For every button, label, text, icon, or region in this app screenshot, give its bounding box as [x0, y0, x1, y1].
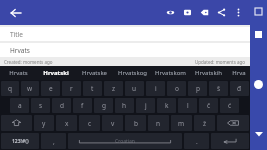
staticText: Hrvatskom — [155, 69, 186, 77]
staticText: w — [27, 84, 33, 93]
staticText: o — [175, 84, 179, 93]
button[interactable]: Shift — [1, 115, 32, 131]
button[interactable]: j — [136, 98, 155, 113]
staticText: i — [155, 84, 157, 93]
button[interactable]: ž — [194, 115, 215, 131]
button[interactable]: Home — [250, 71, 267, 97]
staticText: z — [112, 84, 116, 93]
button[interactable]: w — [21, 81, 39, 96]
button[interactable]: o — [167, 81, 186, 96]
button[interactable]: z — [104, 81, 123, 96]
button[interactable]: g — [94, 98, 113, 113]
button[interactable]: Title — [0, 27, 250, 41]
staticText: Hrvatske — [82, 69, 107, 77]
button[interactable]: Hrvatske — [75, 66, 113, 80]
button[interactable]: q — [1, 81, 19, 96]
button[interactable]: f — [73, 98, 92, 113]
staticText: f — [81, 101, 84, 110]
staticText: Hrvatskih — [195, 69, 222, 77]
button[interactable]: r — [62, 81, 81, 96]
staticText: č — [207, 101, 211, 110]
button[interactable]: Recent apps — [250, 0, 267, 22]
button[interactable]: k — [157, 98, 176, 113]
button[interactable]: n — [148, 115, 169, 131]
button[interactable]: v — [102, 115, 123, 131]
staticText: k — [165, 101, 169, 110]
staticText: š — [217, 84, 221, 93]
staticText: y — [42, 119, 46, 128]
button[interactable]: Hrva — [227, 66, 250, 80]
staticText: . — [196, 137, 198, 146]
button[interactable]: Label — [196, 4, 213, 21]
staticText: e — [49, 84, 53, 93]
staticText: u — [132, 84, 137, 93]
button[interactable]: š — [209, 81, 228, 96]
staticText: d — [60, 101, 64, 110]
staticText: Hrvats — [10, 46, 30, 55]
button[interactable]: u — [125, 81, 144, 96]
staticText: Hrvatskog — [118, 69, 147, 77]
button[interactable]: l — [178, 98, 197, 113]
button[interactable]: c — [79, 115, 100, 131]
button[interactable]: Hrvatskom — [151, 66, 189, 80]
staticText: l — [187, 101, 189, 110]
button[interactable]: h — [115, 98, 134, 113]
button[interactable]: Share — [213, 4, 230, 21]
button[interactable]: Photo — [179, 4, 196, 21]
button[interactable]: b — [125, 115, 146, 131]
staticText: Created: moments ago — [4, 59, 53, 65]
button[interactable]: đ — [230, 81, 249, 96]
button[interactable]: 123!#() — [1, 133, 39, 149]
staticText: x — [65, 119, 69, 128]
button[interactable]: Hrvatskih — [189, 66, 227, 80]
button[interactable]: x — [56, 115, 77, 131]
staticText: n — [156, 119, 161, 128]
staticText: Hrvatski — [43, 69, 69, 77]
button[interactable]: i — [146, 81, 165, 96]
button[interactable]: t — [83, 81, 102, 96]
button[interactable]: Back — [250, 124, 267, 144]
button[interactable]: Enter — [211, 133, 249, 149]
button[interactable]: Hrvatskog — [113, 66, 151, 80]
staticText: b — [134, 119, 138, 128]
staticText: ć — [228, 101, 232, 110]
staticText: Title — [10, 30, 23, 39]
button[interactable]: Preview — [162, 4, 179, 21]
staticText: m — [178, 119, 185, 128]
staticText: t — [91, 84, 94, 93]
staticText: ž — [203, 119, 207, 128]
button[interactable]: Delete — [217, 115, 249, 131]
staticText: , — [53, 137, 55, 146]
staticText: Updated: moments ago — [195, 59, 246, 65]
button[interactable]: p — [188, 81, 207, 96]
button[interactable]: Hrvatski — [37, 66, 75, 80]
button[interactable]: Overview — [250, 22, 267, 46]
button[interactable]: č — [199, 98, 218, 113]
staticText: Hrva — [232, 69, 246, 77]
button[interactable]: Hrvats — [0, 43, 250, 57]
staticText: v — [111, 119, 115, 128]
button[interactable]: More options — [230, 4, 247, 21]
button[interactable]: , — [41, 133, 66, 149]
staticText: g — [102, 101, 106, 110]
button[interactable]: e — [41, 81, 60, 96]
staticText: j — [145, 101, 147, 110]
staticText: a — [18, 101, 22, 110]
staticText: s — [39, 101, 43, 110]
button[interactable]: Hrvats — [0, 66, 37, 80]
button[interactable]: d — [52, 98, 71, 113]
button[interactable]: a — [10, 98, 29, 113]
button[interactable]: s — [31, 98, 50, 113]
button[interactable]: ć — [220, 98, 239, 113]
button[interactable]: Croatian — [68, 133, 182, 149]
staticText: Croatian — [115, 138, 135, 145]
staticText: q — [8, 84, 12, 93]
button[interactable]: Navigate up — [8, 5, 24, 21]
button[interactable]: y — [34, 115, 54, 131]
staticText: p — [196, 84, 200, 93]
staticText: c — [88, 119, 92, 128]
staticText: đ — [237, 84, 242, 93]
staticText: r — [70, 84, 73, 93]
button[interactable]: m — [171, 115, 192, 131]
